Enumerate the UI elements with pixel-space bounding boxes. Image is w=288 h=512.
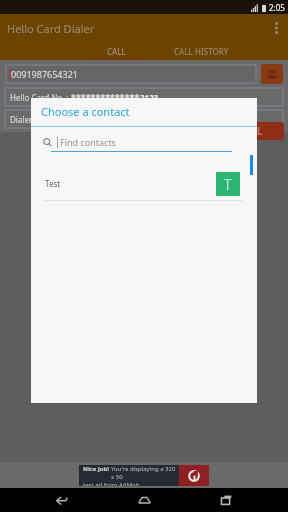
button[interactable]: More options [264, 16, 288, 40]
button[interactable]: CALL [77, 42, 155, 60]
staticText: CALL HISTORY [174, 46, 229, 57]
staticText: Hello Card No. : [10, 92, 71, 103]
button[interactable]: 0091987654321 [5, 64, 257, 84]
button[interactable]: Test [31, 167, 257, 200]
staticText: 2:05 [269, 2, 285, 13]
button[interactable]: Back [42, 488, 82, 512]
button[interactable]: CALL HISTORY [155, 42, 247, 60]
staticText: T [224, 175, 232, 194]
staticText: ************** [71, 91, 140, 103]
staticText: You're displaying a 320 x 50 [111, 465, 179, 481]
button[interactable]: Find contacts [43, 136, 239, 148]
staticText: 2123 [140, 92, 159, 103]
button[interactable]: Recents [206, 488, 246, 512]
button[interactable]: Dialer [5, 110, 283, 128]
button[interactable]: Home [124, 488, 164, 512]
button[interactable]: Hello Card No. : [5, 88, 283, 106]
staticText: CALL [238, 124, 263, 138]
button[interactable]: Pick contact [261, 64, 283, 84]
staticText: Find contacts [60, 136, 116, 148]
staticText: 0091987654321 [11, 68, 78, 80]
button[interactable]: Advertisement [79, 465, 209, 486]
staticText: Hello Card Dialer [7, 21, 95, 36]
staticText: CALL [107, 46, 126, 57]
staticText: test ad from AdMob. [83, 481, 141, 486]
staticText: Nice job! [83, 465, 111, 473]
staticText: Dialer [10, 114, 35, 125]
staticText: Test [45, 178, 61, 189]
button[interactable]: CALL [216, 122, 284, 140]
staticText: Choose a contact [41, 104, 130, 119]
